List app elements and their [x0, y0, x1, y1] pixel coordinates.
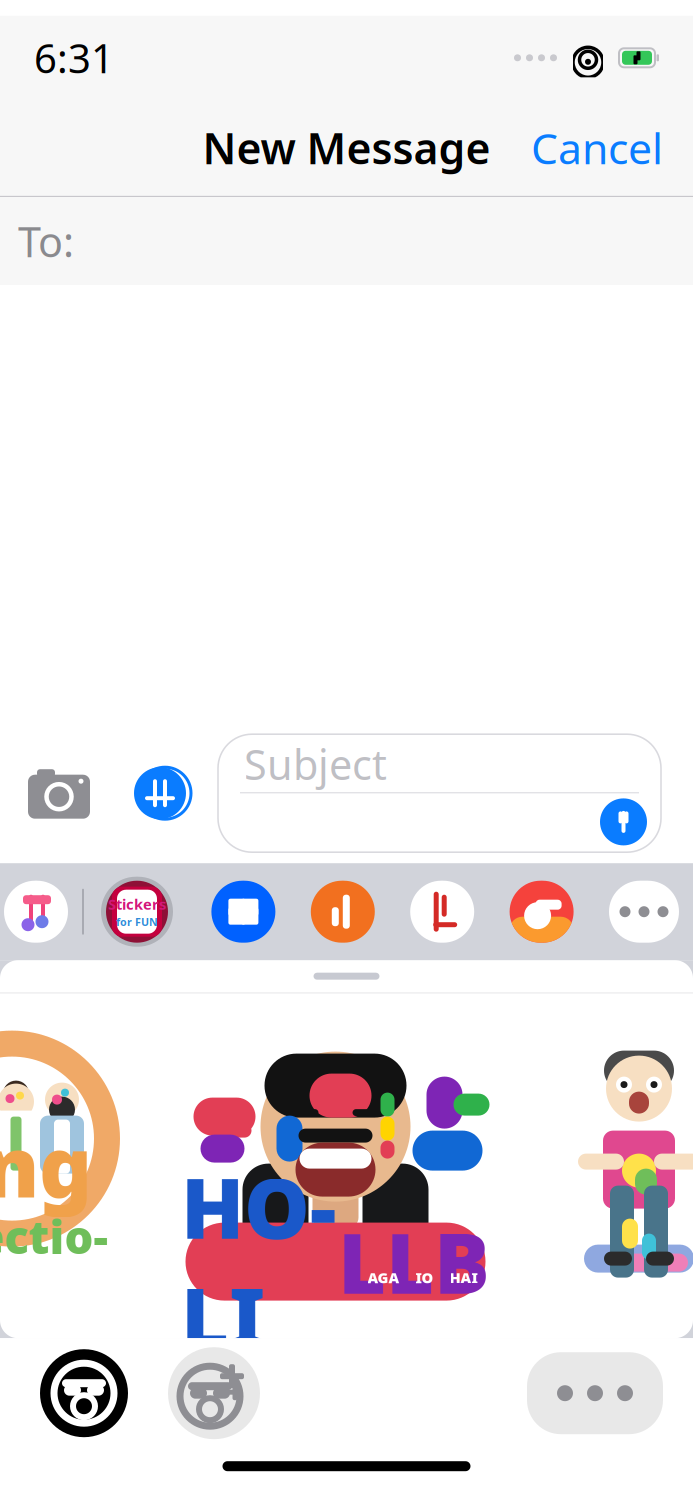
- staticText: 6:31: [34, 31, 114, 84]
- button[interactable]: Geela sticker: [559, 1034, 693, 1284]
- staticText: LLB: [338, 1207, 490, 1316]
- staticText: HOLI: [181, 1152, 336, 1371]
- staticText: for FUN: [116, 915, 158, 929]
- staticText: Subject: [244, 737, 387, 791]
- button[interactable]: Music: [4, 881, 68, 943]
- button[interactable]: Stickers for Fun: [98, 876, 176, 948]
- staticText: New Message: [202, 119, 490, 176]
- staticText: To:: [18, 214, 74, 269]
- button[interactable]: GarageBand: [510, 881, 574, 943]
- button[interactable]: Sticker effects: [166, 1345, 262, 1441]
- button[interactable]: Things: [311, 881, 375, 943]
- button[interactable]: Bhang Connection sticker: [0, 1029, 112, 1289]
- staticText: IO: [415, 1268, 433, 1287]
- staticText: nnection: [0, 1206, 107, 1327]
- button[interactable]: Cancel: [511, 105, 683, 190]
- button[interactable]: Kayak: [410, 881, 474, 943]
- staticText: HAI: [449, 1268, 477, 1287]
- staticText: Cancel: [531, 119, 663, 176]
- button[interactable]: More apps: [609, 881, 679, 943]
- staticText: Stickers: [108, 894, 166, 914]
- button[interactable]: Send: [600, 798, 647, 845]
- button[interactable]: More: [527, 1352, 663, 1434]
- button[interactable]: Dropbox: [211, 881, 275, 943]
- button[interactable]: iMessage apps: [128, 765, 192, 821]
- staticText: AGA: [367, 1268, 399, 1287]
- button[interactable]: Camera: [26, 765, 92, 821]
- button[interactable]: Holi LLB sticker: [170, 1009, 500, 1309]
- button[interactable]: Recents: [36, 1345, 132, 1441]
- staticText: ang: [0, 1110, 92, 1220]
